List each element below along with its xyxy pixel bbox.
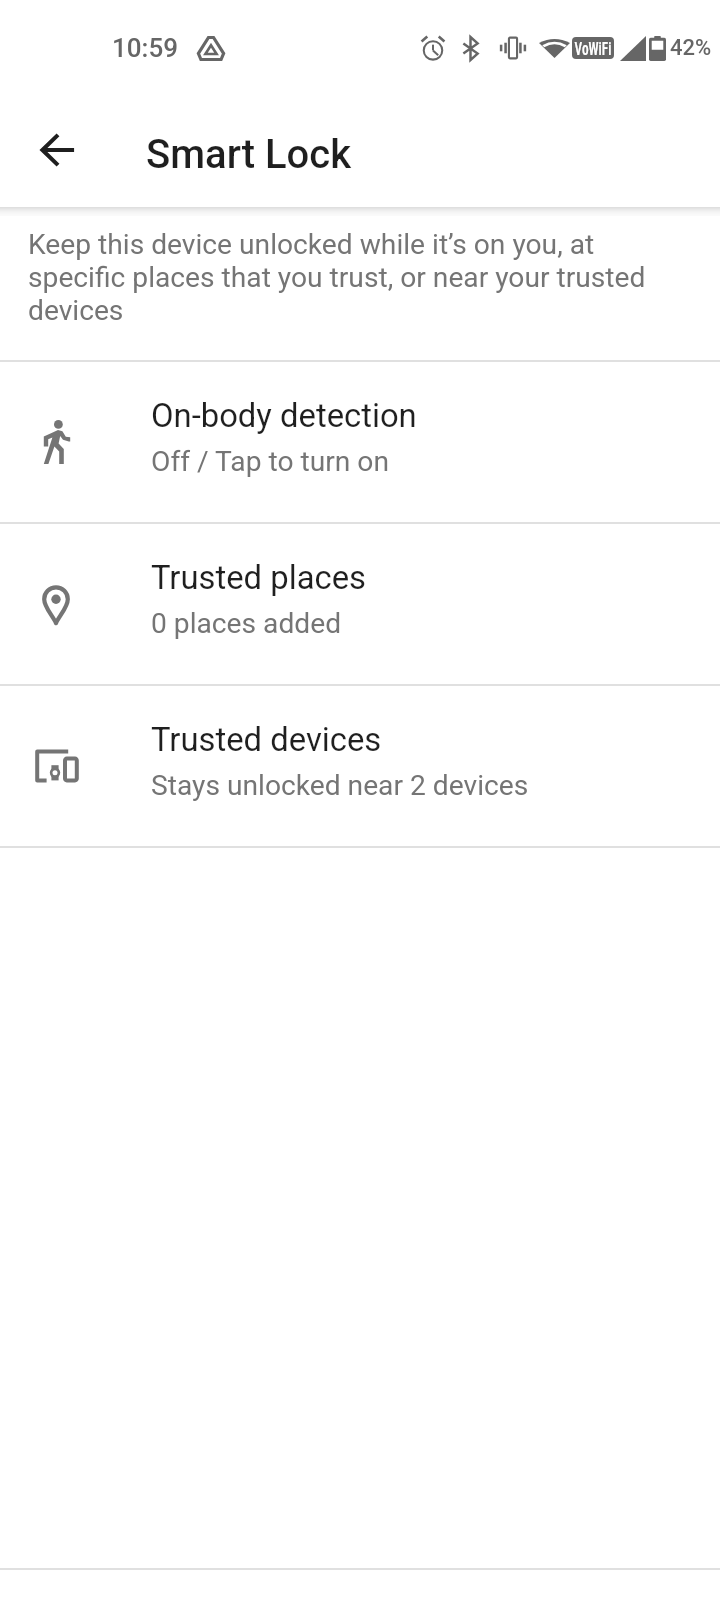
staticText: Stays unlocked near 2 devices <box>151 769 529 802</box>
staticText: Off / Tap to turn on <box>151 445 389 478</box>
button[interactable]: Trusted devices <box>0 686 720 846</box>
button[interactable]: Trusted places <box>0 524 720 684</box>
staticText: Trusted places <box>151 559 366 597</box>
staticText: 42% <box>670 35 712 61</box>
staticText: 10:59 <box>112 33 178 63</box>
button[interactable]: On-body detection <box>0 362 720 522</box>
staticText: VoWiFi <box>573 37 613 59</box>
button[interactable]: Back <box>10 102 106 198</box>
staticText: Keep this device unlocked while it’s on … <box>28 228 662 327</box>
staticText: On-body detection <box>151 397 417 435</box>
staticText: Smart Lock <box>146 131 352 178</box>
staticText: Trusted devices <box>151 721 382 759</box>
staticText: 0 places added <box>151 607 342 640</box>
